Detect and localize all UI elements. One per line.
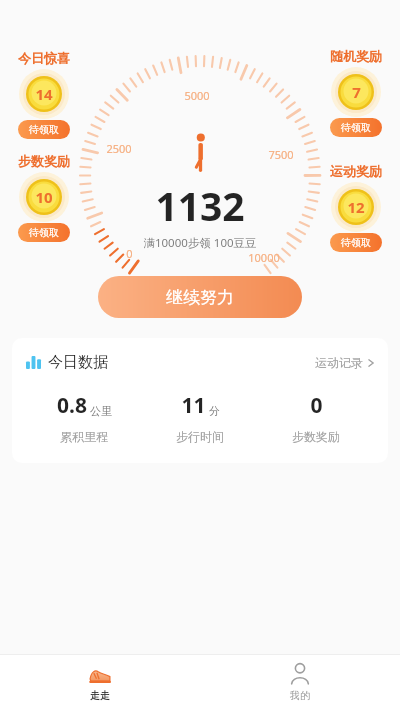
other: 我的 <box>289 663 311 685</box>
staticText: 7 <box>352 82 361 102</box>
staticText: 步数奖励 <box>292 429 340 444</box>
staticText: 步数奖励 <box>18 153 70 169</box>
staticText: 待领取 <box>29 226 59 239</box>
staticText: 待领取 <box>29 123 59 136</box>
button[interactable]: 今日惊喜 <box>4 50 84 139</box>
button[interactable]: 随机奖励 <box>316 48 396 137</box>
staticText: 2500 <box>106 141 132 156</box>
staticText: 运动记录 <box>315 355 363 370</box>
staticText: 公里 <box>90 404 112 418</box>
staticText: 累积里程 <box>60 429 108 444</box>
staticText: 运动奖励 <box>330 163 382 179</box>
button[interactable]: 运动记录 <box>315 355 374 370</box>
button[interactable]: 步数奖励 <box>4 153 84 242</box>
staticText: 12 <box>347 197 365 217</box>
staticText: 今日惊喜 <box>18 50 70 66</box>
staticText: 1132 <box>155 179 245 232</box>
staticText: 分 <box>209 404 220 418</box>
staticText: 待领取 <box>341 121 371 134</box>
staticText: 我的 <box>290 689 310 702</box>
staticText: 今日数据 <box>48 353 108 372</box>
staticText: 0 <box>126 246 133 261</box>
button[interactable]: 继续努力 <box>98 276 302 318</box>
staticText: 待领取 <box>341 236 371 249</box>
staticText: 10000 <box>248 250 280 265</box>
staticText: 0.8 <box>57 391 87 420</box>
staticText: 11 <box>181 391 206 420</box>
staticText: 继续努力 <box>166 287 234 308</box>
staticText: 5000 <box>184 88 210 103</box>
staticText: 走走 <box>90 689 110 702</box>
button[interactable]: 走走 <box>0 655 200 710</box>
button[interactable]: 运动奖励 <box>316 163 396 252</box>
staticText: 7500 <box>268 147 294 162</box>
staticText: 满10000步领 100豆豆 <box>143 235 257 251</box>
staticText: 10 <box>35 187 53 207</box>
staticText: 随机奖励 <box>330 48 382 64</box>
other: 走走 <box>89 663 111 685</box>
staticText: 0 <box>310 391 323 420</box>
button[interactable]: 我的 <box>200 655 400 710</box>
staticText: 14 <box>35 84 53 104</box>
staticText: 步行时间 <box>176 429 224 444</box>
